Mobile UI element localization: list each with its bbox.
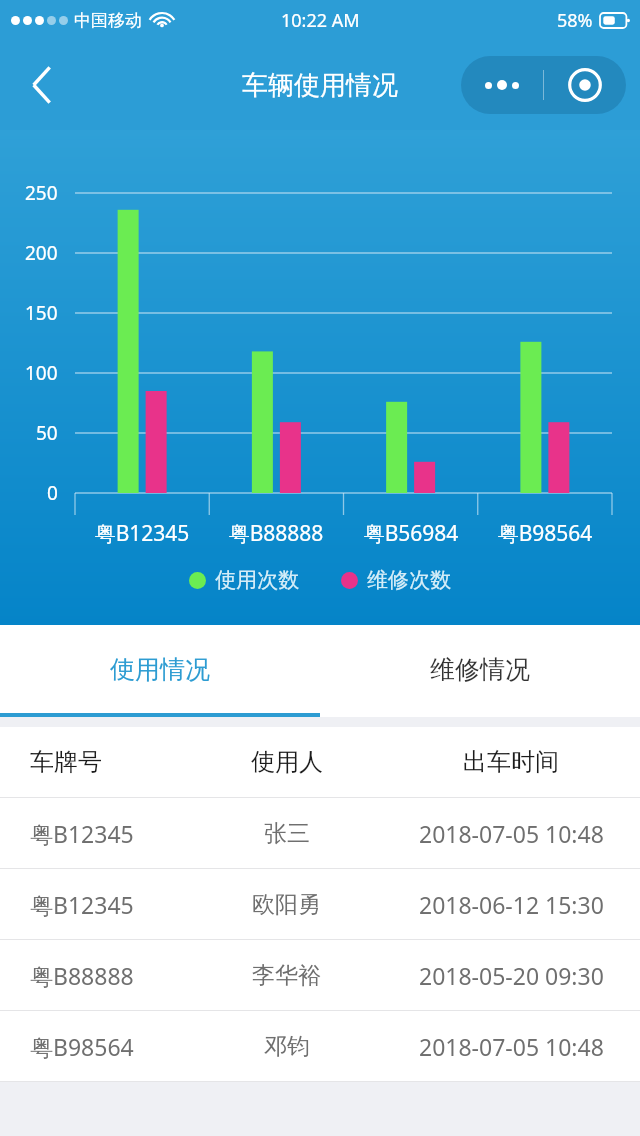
- button[interactable]: 使用次数: [189, 567, 299, 593]
- staticText: 维修次数: [367, 567, 451, 593]
- button[interactable]: 粤B98564: [0, 1011, 640, 1081]
- staticText: 车牌号: [30, 747, 102, 777]
- staticText: 粤B12345: [30, 818, 134, 849]
- staticText: 使用人: [251, 747, 323, 777]
- staticText: 粤B98564: [30, 1031, 134, 1062]
- staticText: 2018-07-05 10:48: [419, 1031, 604, 1062]
- staticText: 中国移动: [74, 10, 142, 31]
- staticText: 150: [25, 300, 58, 326]
- staticText: 粤B98564: [475, 519, 615, 548]
- staticText: 使用次数: [215, 567, 299, 593]
- staticText: 车辆使用情况: [242, 69, 398, 102]
- button[interactable]: 粤B88888: [0, 940, 640, 1010]
- staticText: 2018-05-20 09:30: [419, 960, 604, 991]
- staticText: 粤B12345: [72, 519, 212, 548]
- staticText: 200: [25, 240, 58, 266]
- staticText: 100: [25, 360, 58, 386]
- staticText: 出车时间: [463, 747, 559, 777]
- button[interactable]: 使用情况: [0, 625, 320, 713]
- button[interactable]: 粤B12345: [0, 869, 640, 939]
- staticText: 邓钧: [264, 1032, 310, 1061]
- staticText: 粤B12345: [30, 889, 134, 920]
- staticText: 2018-06-12 15:30: [419, 889, 604, 920]
- button[interactable]: 维修情况: [320, 625, 640, 713]
- staticText: 粤B56984: [341, 519, 481, 548]
- staticText: 维修情况: [430, 654, 530, 685]
- button[interactable]: Back: [12, 55, 72, 115]
- staticText: 2018-07-05 10:48: [419, 818, 604, 849]
- staticText: 50: [36, 420, 58, 446]
- staticText: 使用情况: [110, 654, 210, 685]
- staticText: 250: [25, 180, 58, 206]
- staticText: 欧阳勇: [252, 890, 321, 919]
- staticText: 粤B88888: [30, 960, 134, 991]
- button[interactable]: 维修次数: [341, 567, 451, 593]
- staticText: 10:22 AM: [281, 8, 360, 33]
- staticText: 58%: [557, 8, 593, 33]
- staticText: 粤B88888: [206, 519, 346, 548]
- staticText: 李华裕: [252, 961, 321, 990]
- staticText: 张三: [264, 819, 310, 848]
- button[interactable]: Close: [544, 56, 626, 114]
- staticText: 0: [47, 480, 58, 506]
- button[interactable]: 粤B12345: [0, 798, 640, 868]
- button[interactable]: More options: [461, 56, 543, 114]
